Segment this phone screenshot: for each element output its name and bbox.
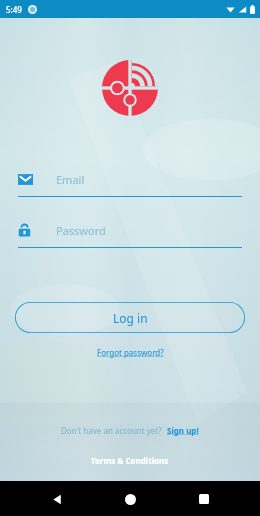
staticText: Forgot password? [97,347,164,358]
button[interactable]: Log in [15,302,245,333]
staticText: Log in [113,310,148,326]
button[interactable]: Back [40,482,74,516]
button[interactable]: Sign up! [167,425,199,436]
button[interactable]: Home [113,482,147,516]
staticText: Sign up! [167,425,199,436]
staticText: Don't have an account yet? [61,425,162,436]
staticText: Terms & Conditions [91,455,169,466]
button[interactable]: Terms & Conditions [85,453,175,468]
staticText: Email [56,172,85,187]
staticText: 5:49 [6,4,22,15]
button[interactable]: Recent apps [187,482,221,516]
button[interactable]: Password [18,217,242,248]
staticText: Password [56,223,106,238]
button[interactable]: Forgot password? [91,344,170,361]
button[interactable]: Email [18,166,242,197]
